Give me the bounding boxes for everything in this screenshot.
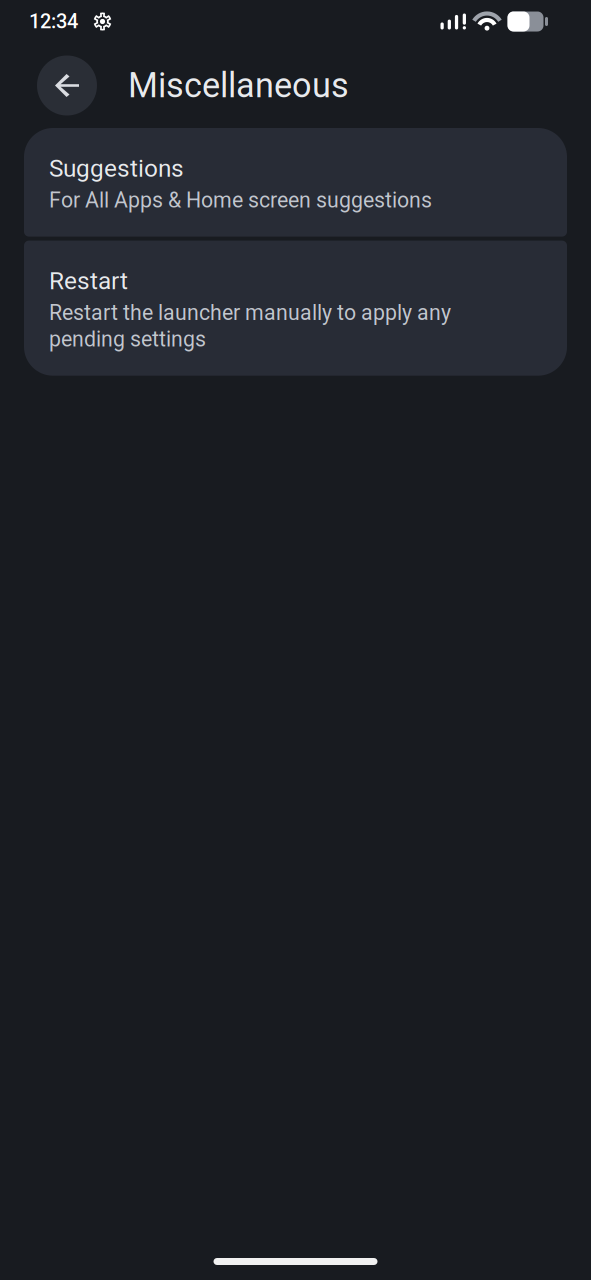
staticText: For All Apps & Home screen suggestions — [49, 188, 432, 213]
button[interactable]: Suggestions — [24, 128, 567, 237]
staticText: 12:34 — [29, 10, 78, 33]
staticText: Miscellaneous — [128, 65, 349, 106]
staticText: Restart the launcher manually to apply a… — [49, 300, 451, 352]
staticText: Restart — [49, 267, 128, 295]
button[interactable]: Restart — [24, 241, 567, 376]
button[interactable]: Back — [37, 55, 97, 115]
staticText: Suggestions — [49, 154, 184, 183]
